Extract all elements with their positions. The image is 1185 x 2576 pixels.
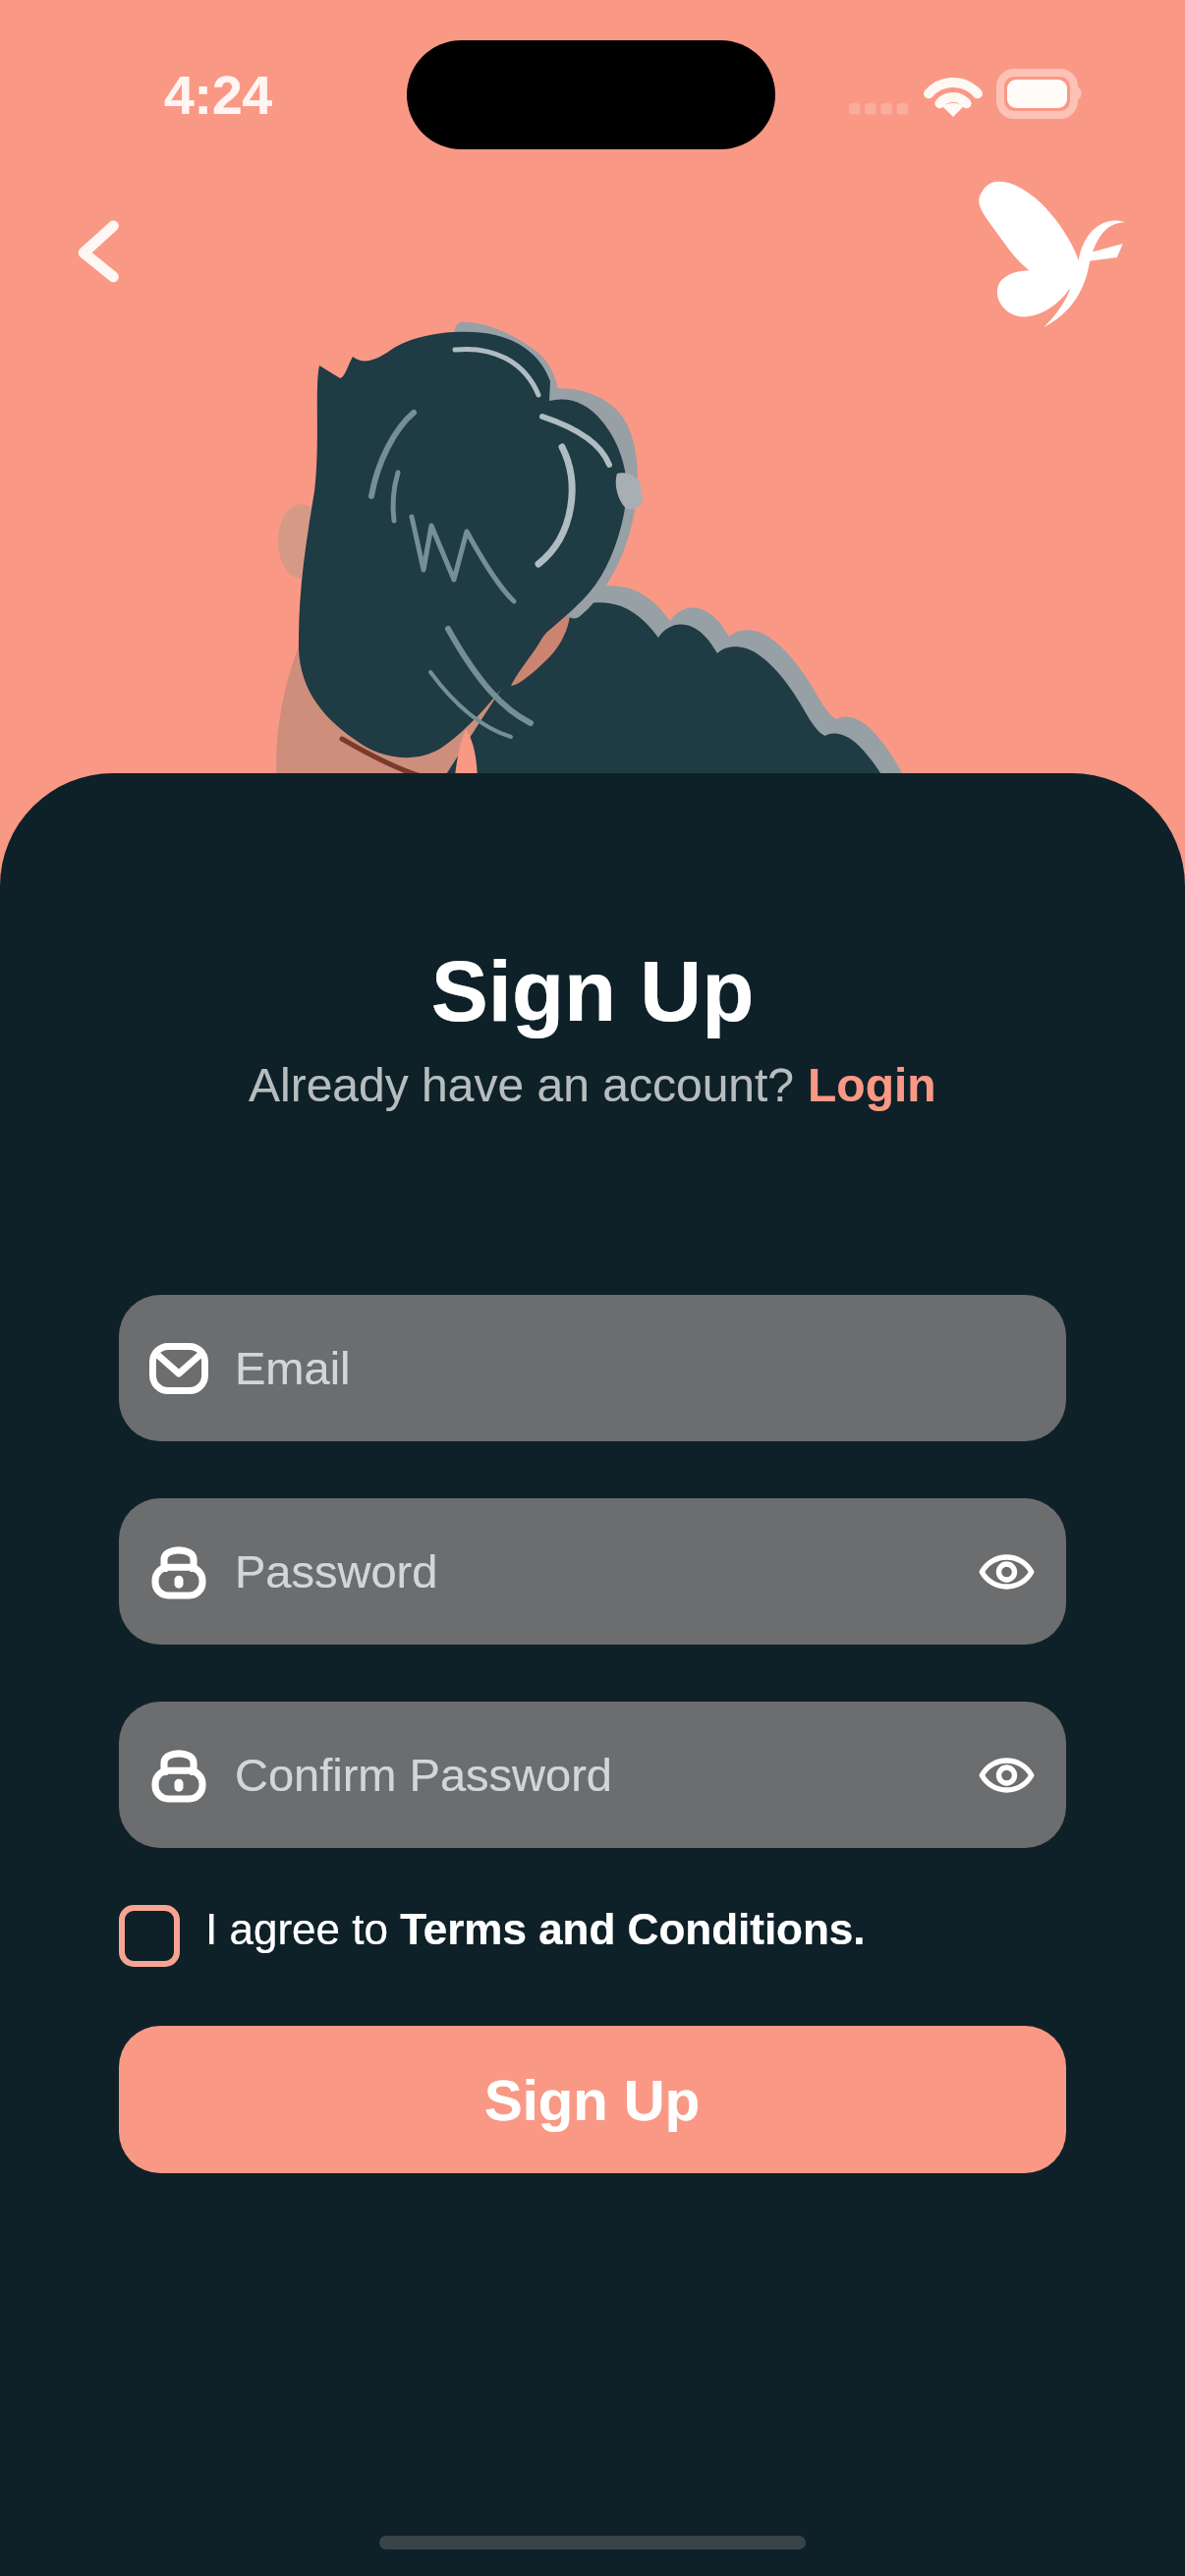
button[interactable]: Show password — [979, 1756, 1035, 1795]
staticText: 4:24 — [164, 65, 273, 125]
staticText: I agree to Terms and Conditions. — [205, 1905, 866, 1953]
button[interactable]: Login — [808, 1059, 936, 1112]
button[interactable]: I agree to Terms and Conditions. — [119, 1896, 866, 1975]
staticText: Password — [235, 1545, 438, 1597]
button[interactable]: Password — [119, 1498, 1066, 1645]
button[interactable]: Back — [51, 201, 145, 296]
staticText: Confirm Password — [235, 1749, 612, 1801]
staticText: Sign Up — [484, 2068, 701, 2132]
button[interactable]: Sign Up — [119, 2026, 1066, 2173]
button[interactable]: Confirm Password — [119, 1702, 1066, 1848]
button[interactable]: Show password — [979, 1552, 1035, 1592]
button[interactable]: Email — [119, 1295, 1066, 1441]
staticText: Already have an account? — [249, 1059, 808, 1112]
button[interactable]: App logo — [978, 174, 1125, 327]
staticText: Email — [235, 1342, 351, 1394]
staticText: Sign Up — [0, 943, 1185, 1038]
